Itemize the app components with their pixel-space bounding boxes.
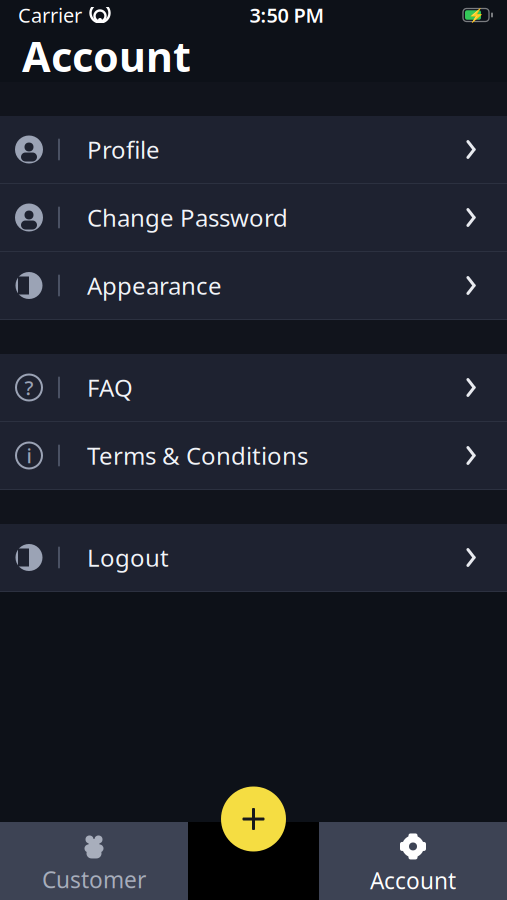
staticText: Carrier xyxy=(18,2,82,28)
staticText: Appearance xyxy=(87,270,222,301)
staticText: Logout xyxy=(87,542,169,573)
button[interactable]: Appearance xyxy=(0,252,507,319)
staticText: Terms & Conditions xyxy=(87,440,308,471)
button[interactable]: Customer xyxy=(0,819,188,900)
staticText: ⚡ xyxy=(467,7,484,23)
staticText: Account xyxy=(22,29,191,83)
button[interactable]: Logout xyxy=(0,524,507,591)
staticText: Profile xyxy=(87,134,160,165)
button[interactable]: Profile xyxy=(0,116,507,183)
button[interactable]: Account xyxy=(319,819,507,900)
button[interactable]: ? xyxy=(0,354,507,421)
button[interactable]: Change Password xyxy=(0,184,507,251)
staticText: 3:50 PM xyxy=(249,2,324,28)
staticText: Customer xyxy=(42,864,146,894)
staticText: ? xyxy=(24,374,33,401)
button[interactable]: Add xyxy=(217,783,289,855)
button[interactable]: i xyxy=(0,422,507,489)
staticText: Change Password xyxy=(87,202,288,233)
staticText: FAQ xyxy=(87,372,133,403)
staticText: i xyxy=(26,442,31,469)
staticText: Account xyxy=(370,865,456,895)
